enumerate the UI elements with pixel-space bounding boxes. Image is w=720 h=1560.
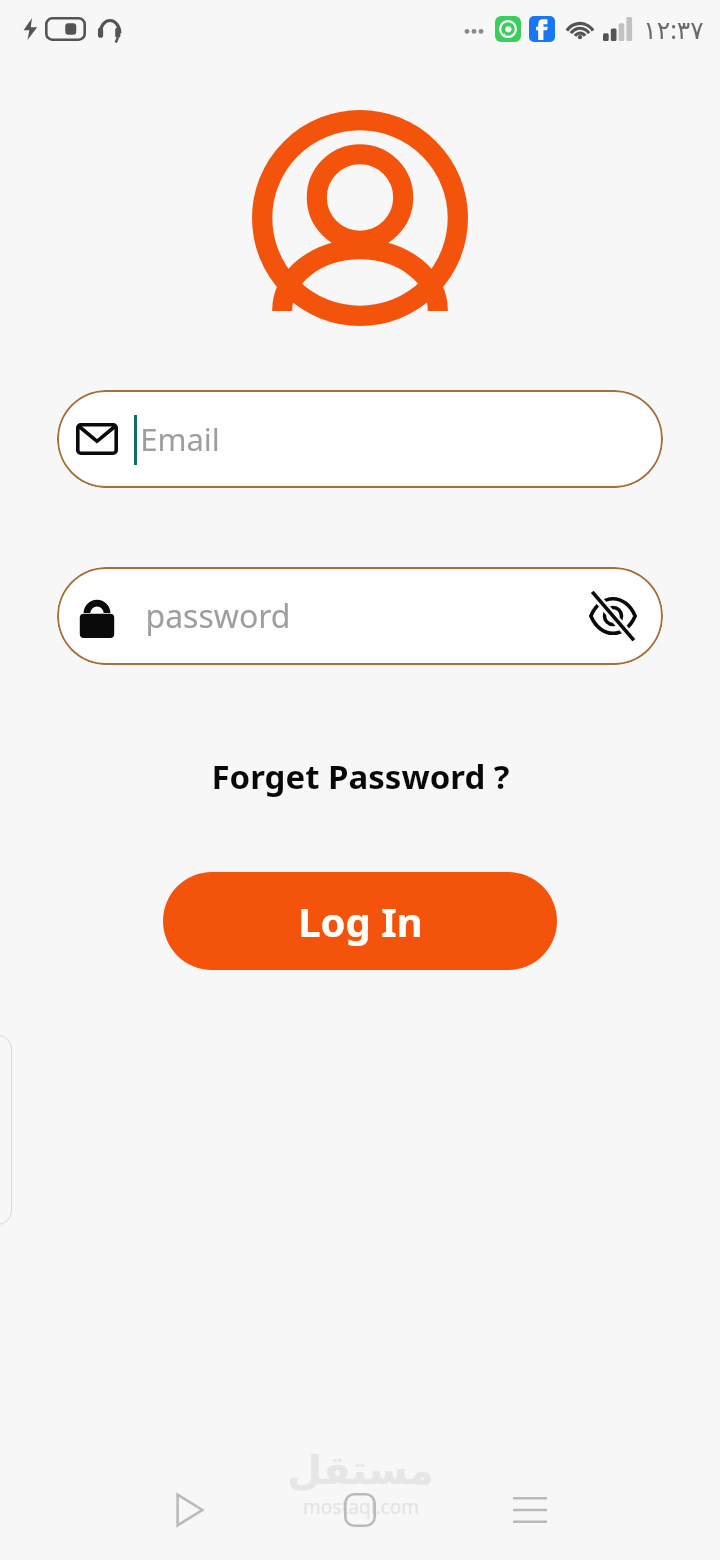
button[interactable]: Email bbox=[57, 390, 663, 488]
button[interactable]: password bbox=[57, 567, 663, 665]
staticText: مستقل bbox=[287, 1447, 434, 1494]
button[interactable]: Back bbox=[150, 1470, 230, 1550]
staticText: Log In bbox=[298, 894, 423, 948]
button[interactable]: Log In bbox=[163, 872, 557, 970]
button[interactable]: Show password bbox=[581, 584, 645, 648]
button[interactable]: Recent apps bbox=[490, 1470, 570, 1550]
staticText: Email bbox=[140, 418, 220, 460]
button[interactable]: Home bbox=[320, 1470, 400, 1550]
button[interactable]: Forget Password ? bbox=[0, 752, 720, 800]
staticText: password bbox=[145, 594, 291, 638]
staticText: mostaql.com bbox=[303, 1494, 419, 1520]
staticText: Forget Password ? bbox=[211, 754, 510, 799]
staticText: ١٢:٣٧ bbox=[643, 12, 704, 46]
